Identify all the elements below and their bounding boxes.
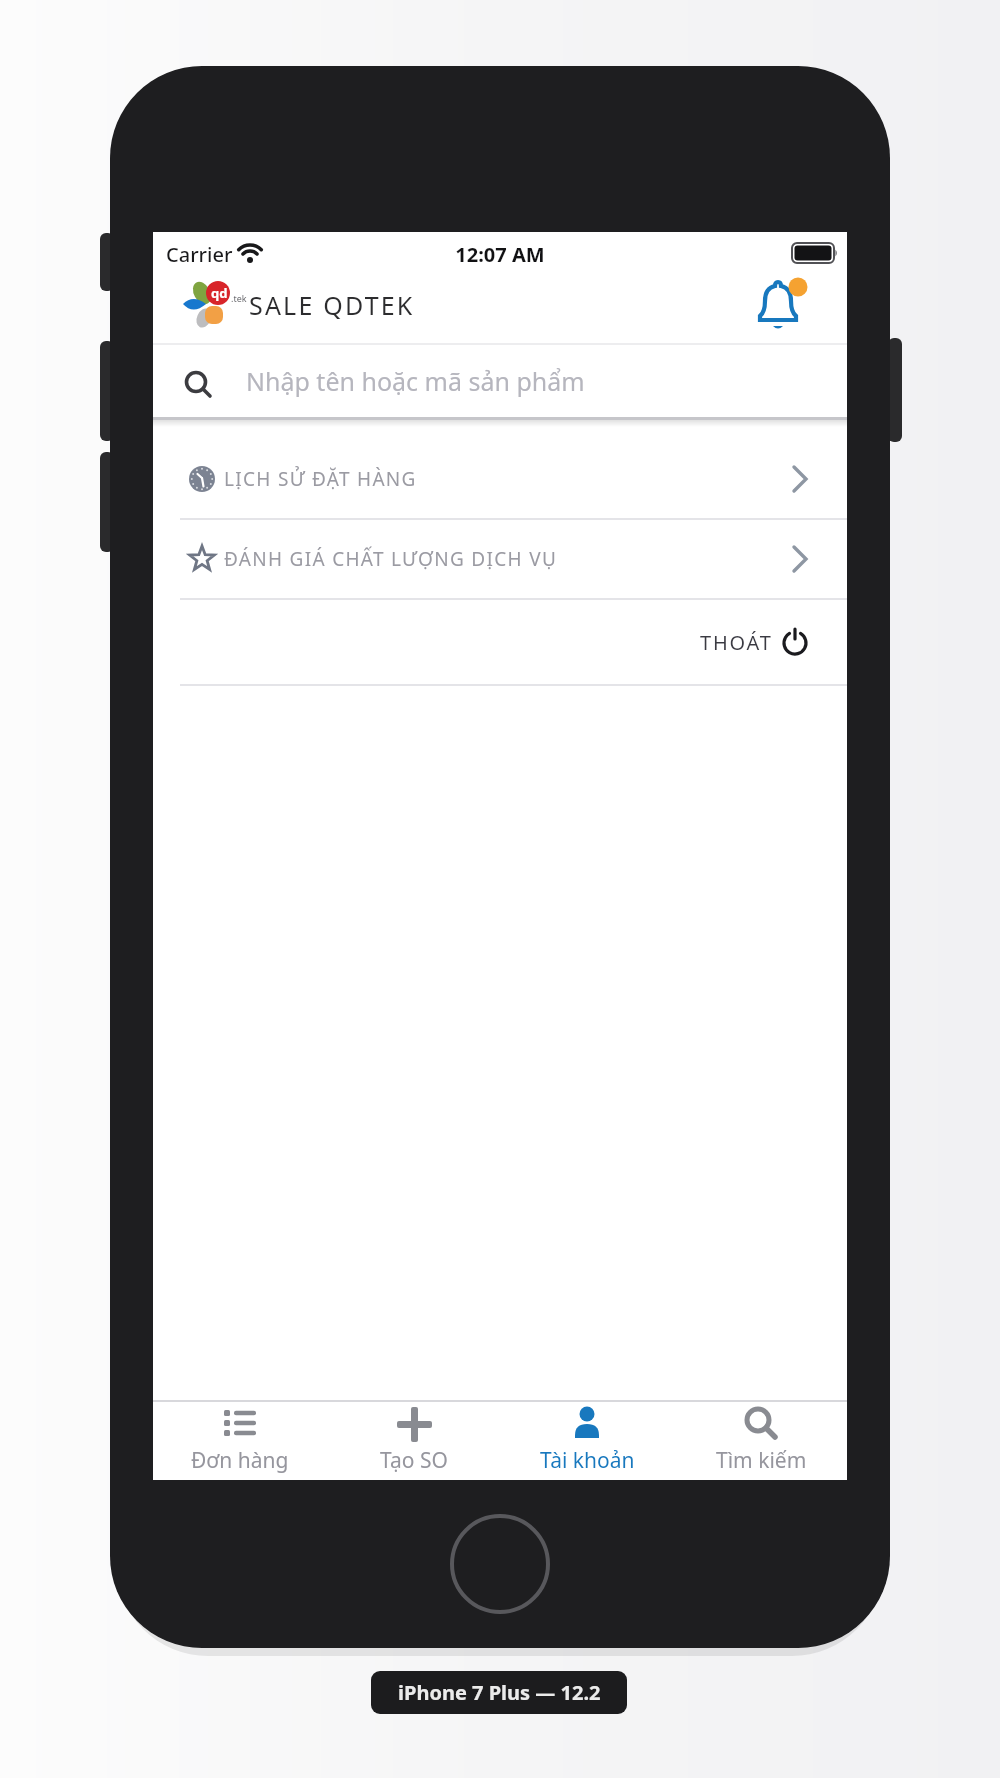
staticText: SALE QDTEK [249,288,415,322]
staticText: THOÁT [700,629,773,656]
button[interactable]: ĐÁNH GIÁ CHẤT LƯỢNG DỊCH VỤ [153,520,847,598]
staticText: Tìm kiếm [716,1446,807,1475]
staticText: Nhập tên hoặc mã sản phẩm [246,364,585,398]
staticText: .tek [231,292,247,304]
staticText: LỊCH SỬ ĐẶT HÀNG [224,466,417,492]
button[interactable] [748,274,812,338]
staticText: Tài khoản [540,1446,635,1475]
button[interactable]: Đơn hàng [153,1402,327,1480]
staticText: ĐÁNH GIÁ CHẤT LƯỢNG DỊCH VỤ [224,546,558,572]
button[interactable]: THOÁT [153,600,847,684]
button[interactable]: Tạo SO [327,1402,501,1480]
button[interactable]: LỊCH SỬ ĐẶT HÀNG [153,430,847,528]
staticText: iPhone 7 Plus — 12.2 [398,1679,601,1706]
button[interactable]: Tài khoản [500,1402,674,1480]
staticText: Carrier [166,241,233,268]
button[interactable]: Nhập tên hoặc mã sản phẩm [153,345,847,417]
button[interactable]: Tìm kiếm [674,1402,848,1480]
staticText: qd [211,284,228,302]
staticText: 12:07 AM [153,241,847,268]
staticText: Tạo SO [380,1446,448,1475]
staticText: Đơn hàng [191,1446,289,1475]
